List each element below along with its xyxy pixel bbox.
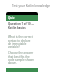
staticText: Quiz	[8, 16, 15, 20]
staticText: Test your Kotlin knowledge	[12, 4, 51, 8]
staticText: Choose the answer that best fits the cod…	[8, 51, 36, 64]
staticText: Question 1 of 10 — Kotlin basics	[8, 22, 36, 30]
staticText: What is the correct syntax to declare an…	[8, 35, 36, 48]
